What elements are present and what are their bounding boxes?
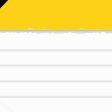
button[interactable]: Notes [0, 0, 112, 112]
